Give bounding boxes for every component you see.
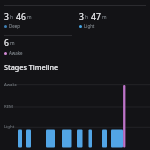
staticText: h bbox=[85, 14, 89, 21]
staticText: Light bbox=[84, 23, 95, 29]
button[interactable]: Stages Timeline bbox=[4, 62, 59, 72]
staticText: Deep bbox=[9, 23, 20, 29]
button[interactable]: 3 bbox=[79, 11, 107, 23]
staticText: m bbox=[27, 14, 32, 21]
staticText: 47 bbox=[91, 11, 101, 23]
staticText: m bbox=[102, 14, 107, 21]
button[interactable]: 3 bbox=[4, 11, 32, 23]
staticText: Light bbox=[4, 123, 15, 129]
staticText: Awake bbox=[9, 50, 23, 56]
staticText: m bbox=[10, 40, 15, 47]
staticText: 3 bbox=[4, 11, 9, 23]
staticText: 6 bbox=[4, 37, 9, 49]
staticText: h bbox=[10, 14, 14, 21]
button[interactable]: 6 bbox=[4, 37, 15, 49]
staticText: 46 bbox=[16, 11, 26, 23]
staticText: 3 bbox=[79, 11, 84, 23]
staticText: Stages Timeline bbox=[4, 62, 59, 72]
staticText: Awake bbox=[4, 81, 18, 87]
staticText: REM bbox=[4, 103, 13, 109]
